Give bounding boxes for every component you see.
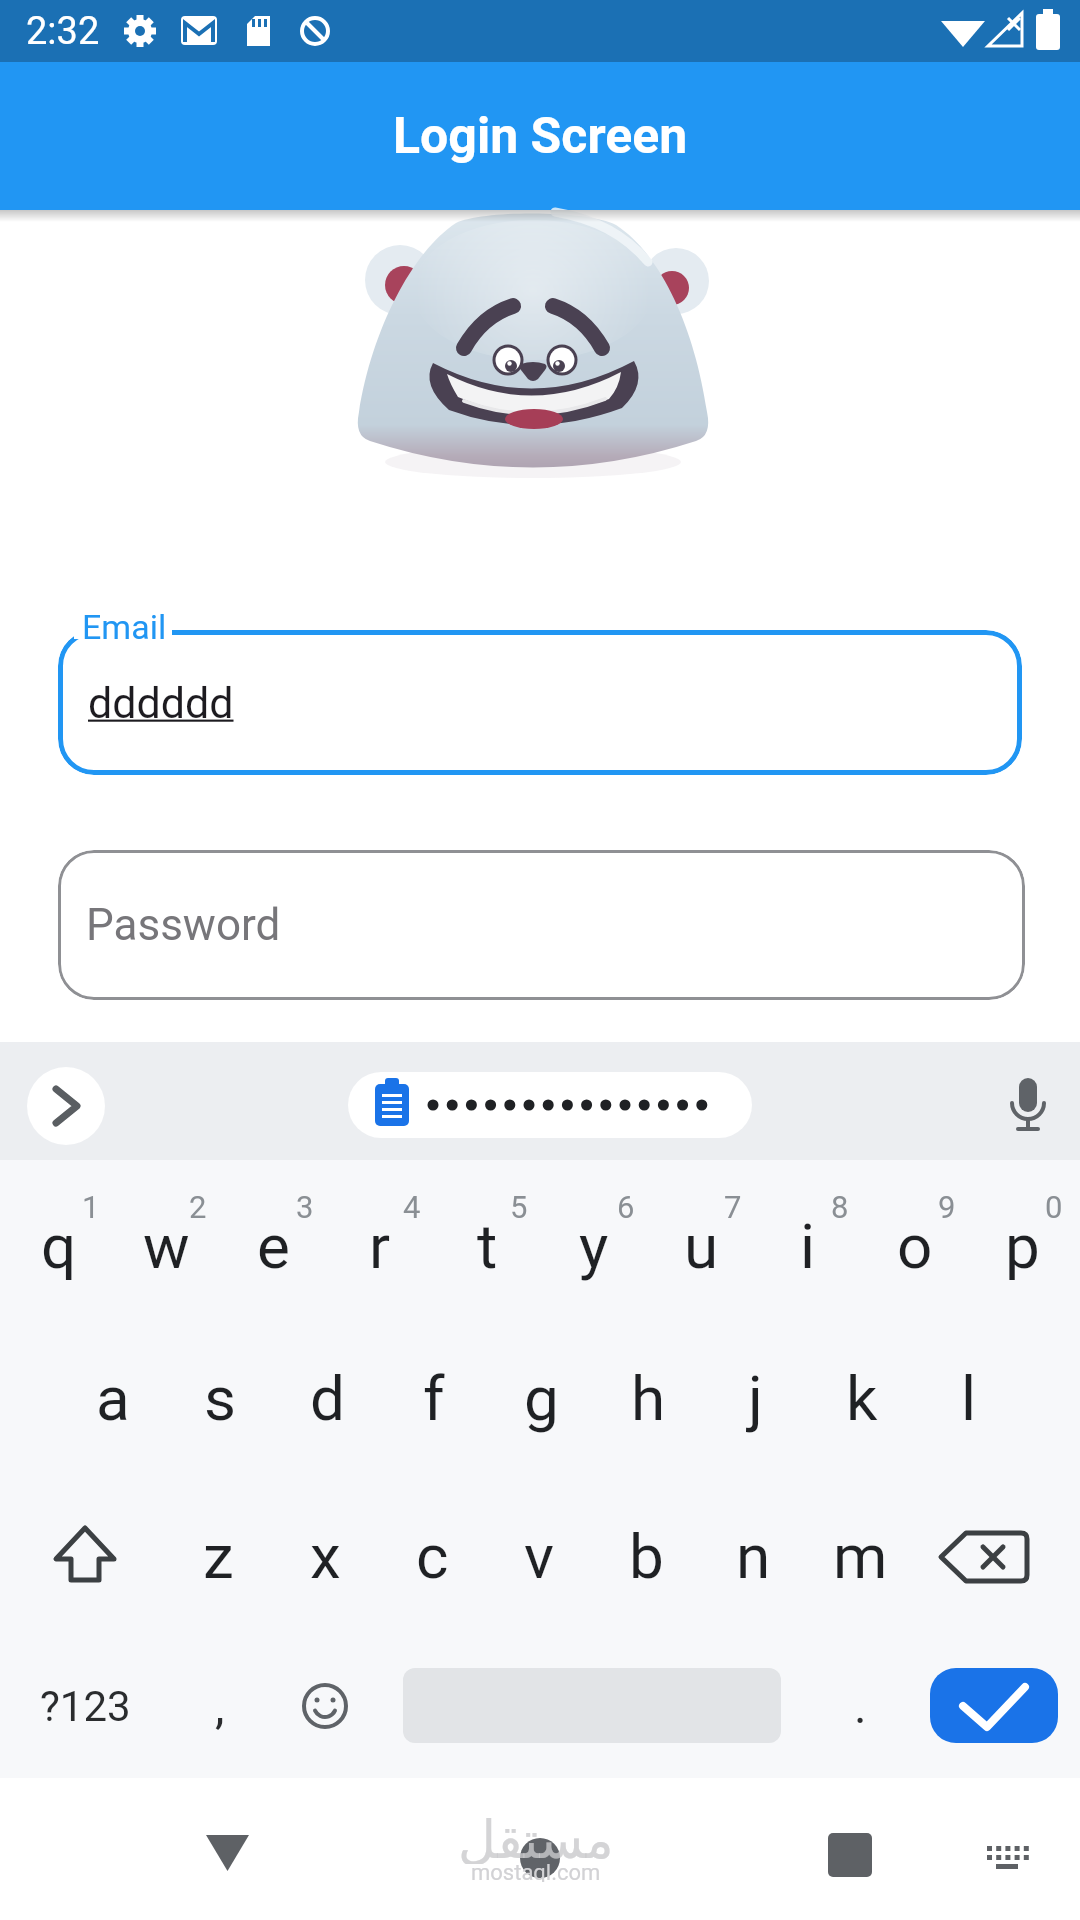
staticText: Email	[82, 607, 167, 647]
button[interactable]: e	[220, 1171, 326, 1321]
button[interactable]: dddddd	[58, 630, 1022, 775]
button[interactable]: t	[434, 1171, 540, 1321]
staticText: k	[846, 1362, 878, 1435]
button[interactable]: q	[6, 1171, 112, 1321]
staticText: h	[631, 1362, 666, 1435]
button[interactable]: w	[113, 1171, 219, 1321]
button[interactable]: d	[274, 1323, 380, 1473]
staticText: ?123	[40, 1682, 131, 1731]
staticText: l	[961, 1362, 977, 1435]
staticText: y	[579, 1210, 609, 1283]
staticText: 1	[82, 1189, 100, 1225]
staticText: z	[203, 1520, 234, 1593]
staticText: q	[41, 1210, 77, 1283]
staticText: i	[800, 1210, 816, 1283]
staticText: u	[684, 1210, 719, 1283]
button[interactable]: l	[916, 1323, 1022, 1473]
staticText: o	[897, 1210, 933, 1283]
staticText: m	[833, 1520, 888, 1593]
staticText: 5	[510, 1189, 528, 1225]
staticText: f	[423, 1362, 445, 1435]
staticText: d	[310, 1362, 345, 1435]
staticText: 8	[831, 1189, 849, 1225]
staticText: a	[96, 1362, 130, 1435]
button[interactable]: s	[167, 1323, 273, 1473]
staticText: 0	[1045, 1189, 1063, 1225]
button[interactable]: j	[702, 1323, 808, 1473]
button[interactable]	[272, 1631, 378, 1781]
button[interactable]: u	[648, 1171, 754, 1321]
staticText: t	[477, 1210, 498, 1283]
staticText: 6	[617, 1189, 635, 1225]
button[interactable]: h	[595, 1323, 701, 1473]
button[interactable]: z	[165, 1481, 271, 1631]
staticText: مستقل	[458, 1810, 614, 1864]
staticText: 3	[296, 1189, 314, 1225]
button[interactable]: x	[272, 1481, 378, 1631]
button[interactable]	[27, 1067, 105, 1145]
staticText: w	[143, 1210, 190, 1283]
staticText: mostaql.com	[471, 1860, 601, 1882]
staticText: dddddd	[88, 678, 234, 728]
button[interactable]: n	[700, 1481, 806, 1631]
button[interactable]	[192, 1822, 264, 1886]
staticText: 2	[189, 1189, 207, 1225]
button[interactable]	[348, 1072, 752, 1138]
button[interactable]: f	[381, 1323, 487, 1473]
staticText: 4	[403, 1189, 421, 1225]
staticText: Login Screen	[393, 107, 688, 166]
staticText: j	[748, 1362, 763, 1435]
button[interactable]: v	[486, 1481, 592, 1631]
staticText: .	[854, 1678, 867, 1734]
staticText: b	[629, 1520, 664, 1593]
staticText: e	[257, 1210, 290, 1283]
button[interactable]: k	[809, 1323, 915, 1473]
button[interactable]	[815, 1820, 885, 1890]
button[interactable]: c	[379, 1481, 485, 1631]
button[interactable]	[930, 1668, 1058, 1743]
staticText: 9	[938, 1189, 956, 1225]
staticText: 7	[724, 1189, 742, 1225]
staticText: 2:32	[26, 9, 100, 54]
staticText: c	[416, 1520, 449, 1593]
staticText: g	[524, 1362, 559, 1435]
staticText: p	[1005, 1210, 1040, 1283]
button[interactable]: a	[60, 1323, 166, 1473]
button[interactable]: ?123	[18, 1631, 152, 1781]
button[interactable]	[505, 1823, 575, 1893]
staticText: x	[310, 1520, 341, 1593]
button[interactable]	[13, 1481, 157, 1631]
staticText: ,	[215, 1678, 225, 1734]
button[interactable]: Password	[58, 850, 1025, 1000]
button[interactable]: m	[807, 1481, 913, 1631]
staticText: n	[736, 1520, 771, 1593]
button[interactable]: ,	[168, 1631, 272, 1781]
button[interactable]: p	[969, 1171, 1075, 1321]
staticText: s	[204, 1362, 236, 1435]
button[interactable]	[996, 1073, 1060, 1137]
button[interactable]: g	[488, 1323, 594, 1473]
button[interactable]: r	[327, 1171, 433, 1321]
staticText: r	[369, 1210, 391, 1283]
button[interactable]: o	[862, 1171, 968, 1321]
button[interactable]: y	[541, 1171, 647, 1321]
button[interactable]: b	[593, 1481, 699, 1631]
button[interactable]	[977, 1830, 1039, 1882]
button[interactable]: i	[755, 1171, 861, 1321]
button[interactable]: .	[808, 1631, 912, 1781]
button[interactable]	[921, 1481, 1069, 1631]
staticText: Password	[86, 899, 281, 951]
staticText: v	[524, 1520, 555, 1593]
